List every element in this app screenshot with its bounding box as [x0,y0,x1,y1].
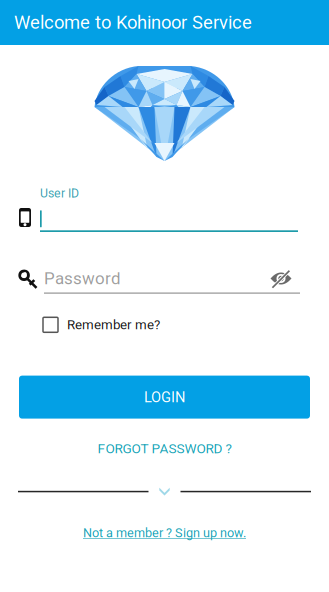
staticText: Remember me? [67,317,160,333]
button[interactable]: Remember me? [43,317,160,333]
staticText: LOGIN [144,388,185,406]
staticText: Password [44,269,121,288]
staticText: Not a member ? Sign up now. [83,526,246,540]
staticText: User ID [40,186,79,200]
button[interactable]: Not a member ? Sign up now. [0,526,329,540]
button[interactable]: FORGOT PASSWORD ? [0,441,329,456]
button[interactable]: Show password [270,269,292,287]
staticText: FORGOT PASSWORD ? [97,441,231,456]
staticText: Welcome to Kohinoor Service [14,12,252,33]
button[interactable]: LOGIN [19,376,310,419]
